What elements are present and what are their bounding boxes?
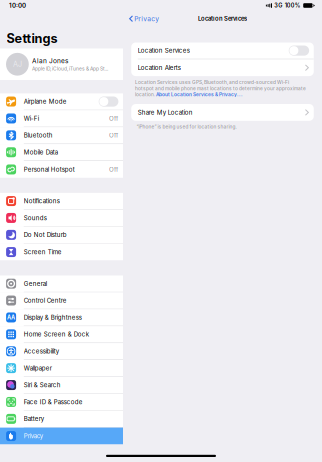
staticText: Wallpaper: [24, 364, 52, 372]
staticText: Mobile Data: [24, 148, 58, 156]
staticText: Personal Hotspot: [24, 166, 75, 173]
staticText: location.: [135, 92, 156, 97]
button[interactable]: Screen Time: [0, 244, 123, 260]
staticText: Settings: [6, 31, 57, 46]
staticText: hotspot and mobile phone mast locations …: [135, 85, 306, 91]
button[interactable]: Personal Hotspot: [0, 161, 123, 178]
staticText: Home Screen & Dock: [24, 331, 89, 338]
staticText: Screen Time: [24, 248, 62, 256]
staticText: Off: [109, 132, 118, 139]
button[interactable]: General: [0, 275, 123, 292]
staticText: Battery: [24, 415, 44, 422]
staticText: Bluetooth: [24, 132, 53, 139]
staticText: Do Not Disturb: [24, 231, 67, 238]
staticText: Share My Location: [138, 109, 193, 116]
staticText: 10:00: [9, 2, 26, 9]
button[interactable]: Privacy: [123, 13, 163, 25]
button[interactable]: Share My Location: [131, 104, 314, 121]
button[interactable]: Sounds: [0, 210, 123, 227]
staticText: Location Services: [138, 47, 190, 54]
button[interactable]: Mobile Data: [0, 144, 123, 161]
staticText: AJ: [13, 60, 22, 69]
button[interactable]: Privacy: [0, 428, 123, 444]
staticText: Control Centre: [24, 297, 67, 304]
staticText: Privacy: [24, 432, 43, 440]
button[interactable]: Face ID & Passcode: [0, 394, 123, 411]
button[interactable]: Control Centre: [0, 292, 123, 309]
button[interactable]: Do Not Disturb: [0, 227, 123, 244]
staticText: Display & Brightness: [24, 314, 82, 321]
staticText: Siri & Search: [24, 381, 61, 389]
button[interactable]: AA: [0, 309, 123, 326]
staticText: 100%: [285, 2, 301, 9]
staticText: Apple ID, iCloud, iTunes & App St...: [32, 66, 108, 72]
button[interactable]: Home Screen & Dock: [0, 326, 123, 343]
button[interactable]: Siri & Search: [0, 377, 123, 394]
staticText: Privacy: [134, 15, 159, 23]
staticText: Alan Jones: [32, 57, 68, 65]
button[interactable]: Wi-Fi: [0, 110, 123, 127]
button[interactable]: Bluetooth: [0, 127, 123, 144]
staticText: Wi-Fi: [24, 115, 39, 122]
staticText: Accessibility: [24, 347, 59, 355]
staticText: Airplane Mode: [24, 98, 67, 105]
button[interactable]: Battery: [0, 411, 123, 428]
staticText: Off: [109, 166, 118, 173]
button[interactable]: Notifications: [0, 193, 123, 210]
button[interactable]: About Location Services & Privacy...: [156, 92, 243, 97]
staticText: Off: [109, 115, 118, 122]
staticText: About Location Services & Privacy...: [156, 92, 243, 97]
button[interactable]: AJ: [0, 48, 123, 80]
staticText: Face ID & Passcode: [24, 398, 83, 406]
button[interactable]: Accessibility: [0, 343, 123, 360]
staticText: AA: [7, 314, 15, 321]
staticText: Sounds: [24, 214, 47, 222]
staticText: “iPhone” is being used for location shar…: [136, 124, 236, 130]
button[interactable]: Airplane Mode: [0, 93, 123, 110]
staticText: 3G: [274, 2, 282, 9]
staticText: Location Services: [198, 15, 247, 22]
button[interactable]: Wallpaper: [0, 360, 123, 377]
button[interactable]: Location Alerts: [131, 59, 314, 76]
button[interactable]: Location Services: [131, 42, 314, 59]
staticText: Location Services uses GPS, Bluetooth, a…: [135, 79, 289, 85]
staticText: Notifications: [24, 197, 60, 205]
staticText: General: [24, 280, 47, 287]
staticText: Location Alerts: [138, 64, 181, 71]
